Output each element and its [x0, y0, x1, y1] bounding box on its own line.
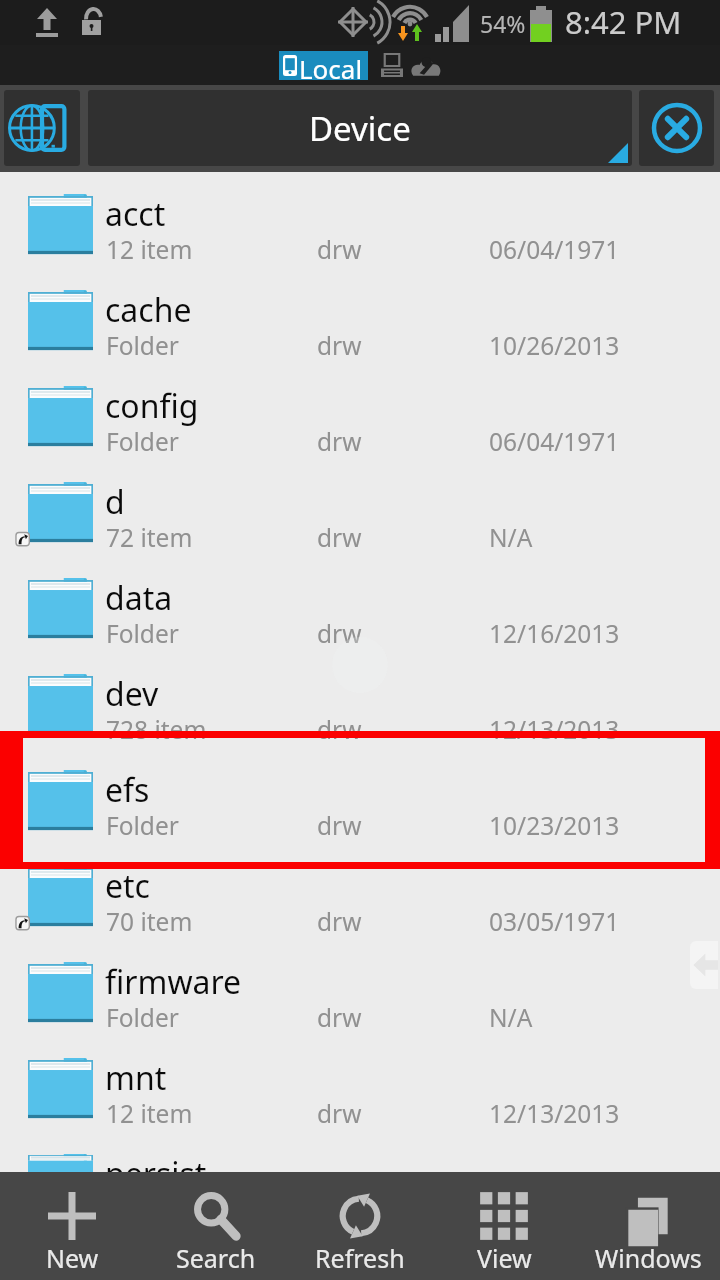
- button[interactable]: dev: [0, 658, 720, 754]
- staticText: 12 item: [106, 233, 193, 266]
- staticText: drw: [317, 713, 362, 746]
- staticText: View: [477, 1241, 532, 1275]
- button[interactable]: efs: [0, 754, 720, 850]
- staticText: 06/04/1971: [489, 233, 620, 266]
- staticText: Folder: [106, 809, 179, 842]
- staticText: drw: [317, 329, 362, 362]
- staticText: drw: [317, 1001, 362, 1034]
- staticText: 06/04/1971: [489, 425, 620, 458]
- staticText: 10/26/2013: [489, 329, 620, 362]
- staticText: New: [46, 1241, 99, 1275]
- staticText: 72 item: [106, 521, 193, 554]
- button[interactable]: Expand panel: [690, 941, 718, 989]
- staticText: Refresh: [315, 1241, 405, 1275]
- staticText: 12/13/2013: [489, 1097, 620, 1130]
- staticText: persist: [105, 1152, 207, 1172]
- button[interactable]: Local: [283, 51, 363, 80]
- staticText: firmware: [105, 960, 242, 1004]
- staticText: 12/16/2013: [489, 617, 620, 650]
- staticText: Local: [299, 51, 363, 80]
- staticText: 12/13/2013: [489, 713, 620, 746]
- staticText: cache: [105, 288, 192, 332]
- staticText: drw: [317, 617, 362, 650]
- staticText: etc: [105, 864, 150, 908]
- staticText: Folder: [106, 617, 179, 650]
- button[interactable]: New: [0, 1172, 144, 1280]
- staticText: 10/23/2013: [489, 809, 620, 842]
- button[interactable]: firmware: [0, 946, 720, 1042]
- staticText: 70 item: [106, 905, 193, 938]
- staticText: drw: [317, 1097, 362, 1130]
- staticText: d: [105, 480, 125, 524]
- staticText: dev: [105, 672, 159, 716]
- staticText: drw: [317, 809, 362, 842]
- button[interactable]: Network browser: [4, 90, 80, 166]
- button[interactable]: persist: [0, 1138, 720, 1172]
- button[interactable]: d: [0, 466, 720, 562]
- button[interactable]: etc: [0, 850, 720, 946]
- button[interactable]: Close: [639, 90, 714, 166]
- staticText: drw: [317, 233, 362, 266]
- staticText: drw: [317, 425, 362, 458]
- staticText: 12 item: [106, 1097, 193, 1130]
- staticText: mnt: [105, 1056, 167, 1100]
- staticText: Device: [309, 106, 411, 151]
- button[interactable]: config: [0, 370, 720, 466]
- button[interactable]: Refresh: [288, 1172, 432, 1280]
- staticText: 03/05/1971: [489, 905, 620, 938]
- button[interactable]: View: [432, 1172, 576, 1280]
- button[interactable]: data: [0, 562, 720, 658]
- button[interactable]: Cloud: [410, 54, 442, 77]
- button[interactable]: Windows: [576, 1172, 720, 1280]
- button[interactable]: Computer: [381, 53, 403, 78]
- button[interactable]: Search: [144, 1172, 288, 1280]
- staticText: N/A: [489, 521, 533, 554]
- staticText: Folder: [106, 329, 179, 362]
- staticText: Search: [176, 1241, 256, 1275]
- staticText: 54%: [480, 8, 526, 39]
- staticText: Folder: [106, 425, 179, 458]
- staticText: efs: [105, 768, 150, 812]
- staticText: data: [105, 576, 173, 620]
- staticText: acct: [105, 192, 166, 236]
- staticText: 728 item: [106, 713, 207, 746]
- staticText: Folder: [106, 1001, 179, 1034]
- staticText: drw: [317, 905, 362, 938]
- staticText: 8:42 PM: [565, 1, 682, 43]
- staticText: config: [105, 384, 199, 428]
- button[interactable]: Device: [88, 90, 632, 166]
- staticText: Windows: [595, 1241, 702, 1275]
- staticText: drw: [317, 521, 362, 554]
- button[interactable]: mnt: [0, 1042, 720, 1138]
- staticText: N/A: [489, 1001, 533, 1034]
- button[interactable]: acct: [0, 178, 720, 274]
- button[interactable]: cache: [0, 274, 720, 370]
